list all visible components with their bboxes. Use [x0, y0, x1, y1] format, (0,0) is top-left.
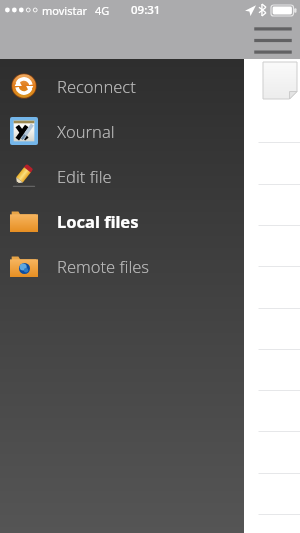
- button[interactable]: [0, 348, 300, 389]
- button[interactable]: [0, 225, 300, 266]
- button[interactable]: [0, 512, 300, 533]
- button[interactable]: Local files: [0, 198, 244, 243]
- button[interactable]: [0, 143, 300, 184]
- staticText: 4G: [95, 3, 110, 18]
- button[interactable]: [0, 430, 300, 471]
- staticText: 09:31: [131, 2, 161, 18]
- button[interactable]: Xournal: [0, 108, 244, 153]
- button[interactable]: Menu: [249, 21, 297, 59]
- button[interactable]: [0, 307, 300, 348]
- button[interactable]: [0, 389, 300, 430]
- staticText: Xournal: [57, 120, 115, 142]
- button[interactable]: [0, 59, 300, 143]
- staticText: Edit file: [57, 165, 112, 187]
- staticText: Local files: [57, 210, 139, 232]
- button[interactable]: Remote files: [0, 243, 244, 288]
- button[interactable]: Reconnect: [0, 63, 244, 108]
- button[interactable]: Edit file: [0, 153, 244, 198]
- button[interactable]: [0, 184, 300, 225]
- staticText: Remote files: [57, 255, 150, 277]
- staticText: movistar: [42, 3, 88, 18]
- button[interactable]: [0, 471, 300, 512]
- button[interactable]: [0, 266, 300, 307]
- staticText: Reconnect: [57, 75, 136, 97]
